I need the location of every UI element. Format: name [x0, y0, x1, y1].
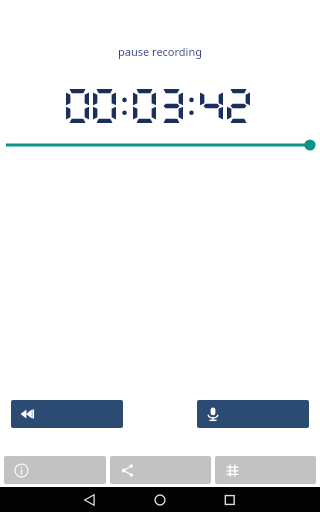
button[interactable]: Share — [110, 456, 211, 484]
button[interactable]: Settings — [215, 456, 316, 484]
button[interactable]: Info — [4, 456, 106, 484]
button[interactable]: Record — [197, 400, 309, 428]
button[interactable]: pause recording — [0, 44, 320, 59]
button[interactable]: Rewind — [11, 400, 123, 428]
button[interactable]: Recording position — [0, 137, 320, 153]
